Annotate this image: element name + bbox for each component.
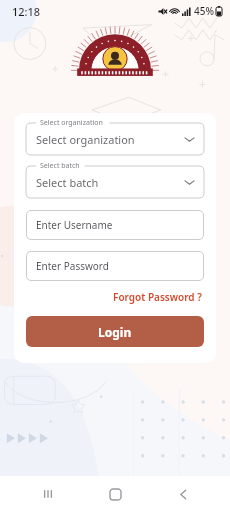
button[interactable]: Home [95,476,135,512]
button[interactable]: Forgot Password ? [111,288,204,306]
staticText: Select batch [36,175,99,190]
button[interactable]: Back [163,476,203,512]
button[interactable]: Select [26,123,204,155]
button[interactable]: Select [26,166,204,198]
staticText: 45% [194,4,214,18]
button[interactable]: Enter Username [26,210,204,240]
button[interactable]: Recent apps [28,476,68,512]
staticText: 12:18 [12,4,41,19]
staticText: Enter Username [36,218,113,232]
staticText: Select organization [36,132,135,147]
button[interactable]: Enter Password [26,251,204,281]
button[interactable]: Login [26,316,204,347]
staticText: Select organization [40,118,103,128]
staticText: Select batch [40,161,80,171]
staticText: Login [98,324,132,340]
staticText: Enter Password [36,259,109,273]
